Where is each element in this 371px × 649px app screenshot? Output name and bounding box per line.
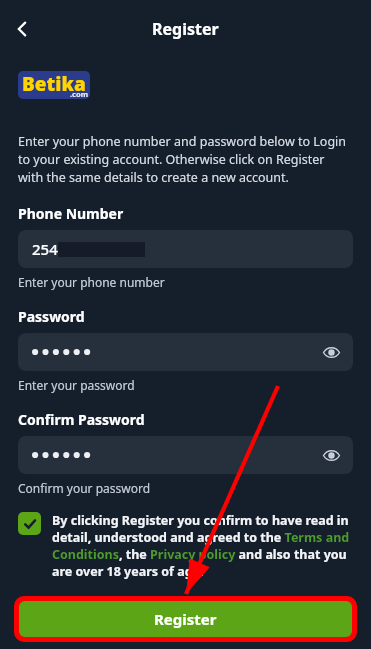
staticText: Password [18,307,85,326]
button[interactable]: Back [2,9,42,49]
button[interactable]: Show password [315,336,347,368]
button[interactable]: Show password [18,436,353,474]
staticText: Register [152,18,219,40]
staticText: Register [154,609,217,629]
staticText: Enter your phone number and password bel… [18,133,353,186]
button[interactable]: Register [19,601,352,637]
button[interactable]: Betika! [18,71,90,99]
staticText: .com [70,89,88,99]
button[interactable]: Accept terms [18,512,41,535]
staticText: Betika! [22,71,90,99]
button[interactable]: Show password [18,333,353,371]
staticText: Enter your password [18,377,135,393]
button[interactable]: 254 [18,230,353,268]
staticText: Confirm Password [18,410,145,429]
staticText: 254 [32,239,58,259]
staticText: Phone Number [18,204,124,223]
button[interactable]: By clicking Register you confirm to have… [52,512,353,580]
staticText: Confirm your password [18,480,151,496]
staticText: Enter your phone number [18,274,165,290]
button[interactable]: Show password [315,439,347,471]
